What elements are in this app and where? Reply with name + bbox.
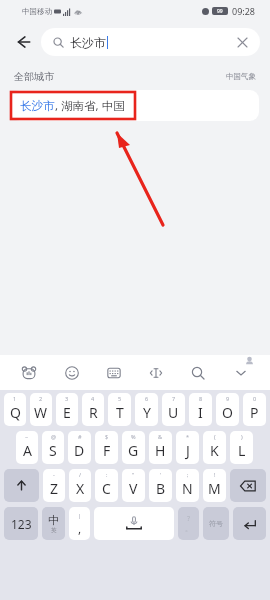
staticText: 2 xyxy=(39,395,43,402)
button[interactable]: / xyxy=(69,469,91,502)
button[interactable]: ( xyxy=(203,431,226,464)
button[interactable]: @ xyxy=(42,431,64,464)
staticText: P xyxy=(250,403,259,422)
button[interactable]: Shift xyxy=(4,469,39,502)
staticText: 3 xyxy=(65,395,69,402)
button[interactable]: Enter xyxy=(233,507,266,540)
staticText: U xyxy=(168,403,179,422)
staticText: # xyxy=(78,433,82,440)
button[interactable]: 6 xyxy=(135,393,158,426)
button[interactable]: * xyxy=(176,431,199,464)
staticText: ? xyxy=(187,514,191,524)
staticText: ! xyxy=(214,471,216,478)
staticText: ( xyxy=(214,433,216,440)
button[interactable]: Back xyxy=(8,27,38,57)
staticText: 8 xyxy=(199,395,203,402)
button[interactable]: ; xyxy=(176,469,199,502)
staticText: " xyxy=(132,471,135,478)
button[interactable]: " xyxy=(122,469,145,502)
staticText: C xyxy=(102,479,111,498)
button[interactable]: 9 xyxy=(216,393,239,426)
staticText: G xyxy=(128,441,139,460)
staticText: 5 xyxy=(118,395,122,402)
staticText: Q xyxy=(10,403,21,422)
staticText: , 湖南省, 中国 xyxy=(55,98,125,114)
staticText: K xyxy=(210,441,219,460)
staticText: $ xyxy=(105,433,109,440)
staticText: * xyxy=(186,433,190,440)
staticText: - xyxy=(53,471,55,478)
button[interactable]: 4 xyxy=(82,393,104,426)
staticText: H xyxy=(155,441,166,460)
button[interactable]: 0 xyxy=(243,393,266,426)
staticText: % xyxy=(131,433,136,440)
staticText: X xyxy=(76,479,85,498)
staticText: ~ xyxy=(25,433,29,440)
staticText: 中 xyxy=(48,513,59,527)
staticText: | xyxy=(78,512,82,520)
staticText: Z xyxy=(50,479,59,498)
button[interactable]: 长沙市 xyxy=(41,28,260,56)
button[interactable]: 123 xyxy=(4,507,38,540)
staticText: 7 xyxy=(172,395,176,402)
staticText: 符号 xyxy=(209,519,223,528)
staticText: S xyxy=(49,441,57,460)
staticText: M xyxy=(208,479,221,498)
button[interactable]: Collapse keyboard xyxy=(228,360,254,386)
button[interactable]: Clear xyxy=(230,30,254,54)
button[interactable]: Search xyxy=(185,360,211,386)
button[interactable]: ~ xyxy=(16,431,38,464)
staticText: ' xyxy=(160,471,162,478)
staticText: 1 xyxy=(13,395,17,402)
button[interactable]: 中 xyxy=(42,507,65,540)
button[interactable]: - xyxy=(43,469,65,502)
button[interactable]: ' xyxy=(149,469,172,502)
button[interactable]: 2 xyxy=(30,393,52,426)
button[interactable]: ! xyxy=(203,469,226,502)
staticText: A xyxy=(23,441,32,460)
button[interactable]: | xyxy=(69,507,90,540)
button[interactable]: 7 xyxy=(162,393,185,426)
staticText: : xyxy=(106,471,108,478)
button[interactable]: 符号 xyxy=(203,507,229,540)
staticText: Y xyxy=(143,403,151,422)
button[interactable]: Keyboard theme xyxy=(16,360,42,386)
staticText: L xyxy=(238,441,246,460)
staticText: @ xyxy=(51,433,56,440)
staticText: 全部城市 xyxy=(14,70,54,83)
button[interactable]: Emoji xyxy=(59,360,85,386)
button[interactable]: $ xyxy=(95,431,118,464)
button[interactable]: 1 xyxy=(4,393,26,426)
staticText: T xyxy=(116,403,124,422)
staticText: 中国气象 xyxy=(226,72,256,81)
button[interactable]: Space xyxy=(94,507,174,540)
button[interactable]: Backspace xyxy=(230,469,266,502)
staticText: 9 xyxy=(226,395,230,402)
staticText: F xyxy=(103,441,111,460)
staticText: J xyxy=(186,441,190,460)
button[interactable]: 8 xyxy=(189,393,212,426)
staticText: 0 xyxy=(253,395,257,402)
button[interactable]: 长沙市 xyxy=(11,90,259,121)
button[interactable]: 3 xyxy=(56,393,78,426)
button[interactable]: 5 xyxy=(108,393,131,426)
button[interactable]: ? xyxy=(178,507,199,540)
staticText: N xyxy=(182,479,193,498)
staticText: D xyxy=(74,441,85,460)
button[interactable]: Text editing xyxy=(143,360,169,386)
staticText: , xyxy=(78,520,82,536)
button[interactable]: & xyxy=(149,431,172,464)
button[interactable]: % xyxy=(122,431,145,464)
button[interactable]: # xyxy=(68,431,91,464)
staticText: ; xyxy=(187,471,189,478)
staticText: 4 xyxy=(91,395,95,402)
staticText: / xyxy=(79,471,82,478)
staticText: 6 xyxy=(145,395,149,402)
button[interactable]: ) xyxy=(230,431,253,464)
button[interactable]: Keyboard layout xyxy=(101,360,127,386)
staticText: ) xyxy=(241,433,243,440)
staticText: 中国移动 xyxy=(22,7,52,16)
staticText: & xyxy=(158,433,163,440)
button[interactable]: : xyxy=(95,469,118,502)
